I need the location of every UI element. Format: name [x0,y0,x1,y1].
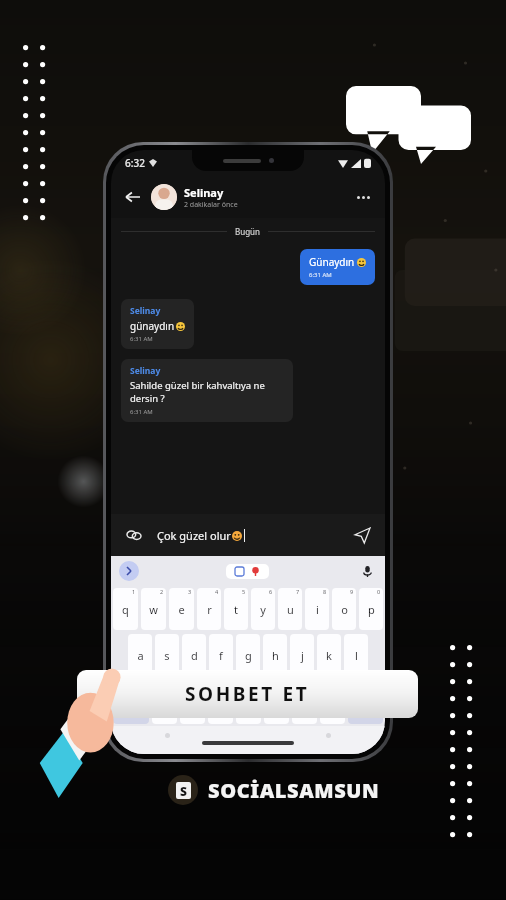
staticText: u [287,602,294,617]
staticText: Sahilde güzel bir kahvaltıya ne dersin ? [130,379,284,405]
staticText: 6 [269,588,273,595]
button[interactable]: f [209,634,233,677]
button[interactable]: SOHBET ET [77,670,418,718]
button[interactable]: z [152,681,177,724]
staticText: y [260,602,266,617]
staticText: 9 [350,588,354,595]
button[interactable]: Shift [113,681,149,724]
button[interactable]: l [344,634,368,677]
staticText: Bugün [235,226,260,237]
staticText: i [316,602,319,617]
button[interactable]: Günaydın [300,249,375,285]
staticText: g [245,648,252,663]
staticText: l [355,648,358,663]
button[interactable]: h [263,634,287,677]
button[interactable]: s [155,634,179,677]
staticText: w [149,602,158,617]
staticText: 7 [296,588,300,595]
staticText: p [368,602,375,617]
button[interactable]: c [208,681,233,724]
button[interactable]: Send [351,524,373,546]
button[interactable]: Voice input [357,561,377,581]
staticText: 4 [215,588,219,595]
button[interactable] [226,564,269,579]
button[interactable]: b [264,681,289,724]
staticText: o [341,602,348,617]
button[interactable]: Profile photo [151,184,177,210]
button[interactable]: o [332,588,356,630]
button[interactable]: Back [121,185,145,209]
staticText: q [122,602,129,617]
button[interactable]: Attach [123,524,145,546]
button[interactable]: q [113,588,138,630]
staticText: S [180,783,187,799]
staticText: Selinay [130,305,161,317]
staticText: h [272,648,279,663]
staticText: SOCİALSAMSUN [208,777,380,804]
button[interactable]: Selinay [121,299,194,349]
button[interactable]: Expand toolbar [119,561,139,581]
staticText: SOHBET ET [185,681,310,707]
staticText: günaydın [130,319,175,333]
button[interactable]: d [182,634,206,677]
staticText: 6:32 [125,156,145,170]
button[interactable]: r [197,588,221,630]
button[interactable]: Selinay [121,359,293,422]
staticText: 6:31 AM [130,335,153,343]
button[interactable]: i [305,588,329,630]
staticText: d [191,648,198,663]
staticText: 1 [132,588,136,595]
button[interactable]: y [251,588,275,630]
button[interactable]: u [278,588,302,630]
staticText: m [327,695,338,710]
staticText: f [219,648,223,663]
staticText: 3 [188,588,192,595]
button[interactable]: w [141,588,166,630]
staticText: Selinay [184,185,224,200]
button[interactable]: t [224,588,248,630]
staticText: x [190,695,196,710]
button[interactable]: m [320,681,345,724]
staticText: k [326,648,332,663]
staticText: v [246,695,252,710]
staticText: 2 dakikalar önce [184,200,238,210]
button[interactable]: j [290,634,314,677]
button[interactable]: x [180,681,205,724]
button[interactable]: k [317,634,341,677]
button[interactable]: More options [351,185,375,209]
button[interactable]: Selinay [184,185,351,210]
staticText: Selinay [130,365,161,377]
staticText: b [273,695,280,710]
staticText: n [301,695,308,710]
staticText: c [218,695,224,710]
staticText: 6:31 AM [309,271,332,279]
staticText: z [162,695,168,710]
staticText: a [137,648,144,663]
staticText: e [178,602,185,617]
staticText: Günaydın [309,255,355,269]
button[interactable]: Backspace [348,681,383,724]
staticText: 6:31 AM [130,408,153,416]
staticText: r [207,602,212,617]
button[interactable]: e [169,588,194,630]
button[interactable]: n [292,681,317,724]
staticText: 5 [242,588,246,595]
button[interactable]: a [128,634,152,677]
staticText: s [164,648,170,663]
button[interactable]: g [236,634,260,677]
staticText: t [234,602,238,617]
button[interactable]: Çok güzel olur [157,528,351,543]
staticText: 8 [323,588,327,595]
staticText: j [301,648,304,663]
button[interactable]: v [236,681,261,724]
button[interactable]: p [359,588,383,630]
staticText: 2 [160,588,164,595]
staticText: 0 [377,588,381,595]
staticText: Çok güzel olur [157,528,231,543]
